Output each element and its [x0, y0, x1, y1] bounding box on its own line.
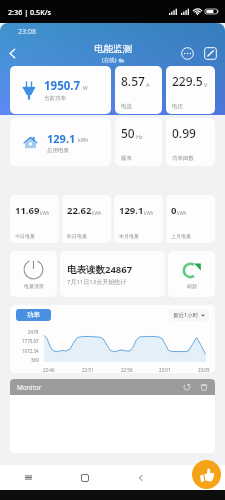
- staticText: Hz: [136, 133, 143, 140]
- button[interactable]: 11.69: [10, 195, 59, 243]
- staticText: 电表读数24867: [67, 263, 133, 276]
- staticText: 50: [121, 125, 135, 141]
- button[interactable]: 22.62: [62, 195, 111, 243]
- staticText: 今日电量: [15, 233, 35, 239]
- staticText: Monitor: [17, 383, 42, 392]
- button[interactable]: 129.1: [10, 118, 111, 166]
- staticText: kWh: [78, 137, 89, 144]
- button[interactable]: 50: [115, 118, 162, 166]
- button[interactable]: Home: [57, 465, 113, 490]
- staticText: 电压: [172, 103, 183, 110]
- button[interactable]: 229.5: [166, 66, 215, 114]
- staticText: 22.62: [67, 204, 92, 217]
- staticText: 22:46: [43, 367, 55, 373]
- staticText: 23:05: [198, 367, 210, 373]
- staticText: 0.99: [172, 125, 196, 141]
- button[interactable]: 1950.7: [10, 66, 111, 114]
- staticText: 2479: [28, 329, 39, 335]
- staticText: 本月电量: [119, 233, 139, 239]
- staticText: 129.1: [47, 131, 76, 146]
- staticText: 电量清零: [24, 283, 44, 289]
- staticText: 功率: [27, 311, 40, 319]
- staticText: 23:08: [18, 27, 36, 37]
- staticText: 1072.34: [22, 348, 39, 354]
- button[interactable]: Recent apps: [0, 465, 57, 490]
- staticText: 总用电量: [47, 147, 69, 154]
- button[interactable]: Edit: [201, 44, 219, 62]
- staticText: kWh: [177, 210, 187, 216]
- button[interactable]: 电量清零: [10, 251, 57, 297]
- staticText: 11.69: [15, 204, 40, 217]
- staticText: 22:56: [121, 367, 133, 373]
- staticText: 7月11日13点开始统计: [67, 278, 127, 286]
- button[interactable]: Delete: [198, 381, 210, 393]
- button[interactable]: Refresh: [181, 381, 193, 393]
- staticText: 22:51: [82, 367, 94, 373]
- staticText: 频率: [121, 155, 132, 162]
- staticText: 最近1小时: [173, 311, 199, 319]
- button[interactable]: 0: [166, 195, 215, 243]
- staticText: 0: [171, 204, 177, 217]
- button[interactable]: 最近1小时: [169, 309, 209, 321]
- staticText: 功率因数: [172, 155, 194, 162]
- staticText: (在线): [102, 56, 117, 64]
- button[interactable]: Back: [1, 42, 23, 64]
- staticText: 369: [31, 357, 39, 363]
- button[interactable]: 刷新: [168, 251, 215, 297]
- button[interactable]: 8.57: [115, 66, 162, 114]
- staticText: kWh: [144, 210, 154, 216]
- button[interactable]: 功率: [16, 309, 51, 321]
- button[interactable]: 0.99: [166, 118, 215, 166]
- staticText: 当前功率: [44, 95, 66, 102]
- staticText: 129.1: [119, 204, 144, 217]
- staticText: kWh: [92, 210, 102, 216]
- staticText: 上月电量: [171, 233, 191, 239]
- button[interactable]: 129.1: [114, 195, 163, 243]
- staticText: 1775.67: [22, 338, 39, 344]
- staticText: V: [204, 81, 208, 88]
- button[interactable]: Back: [113, 465, 169, 490]
- staticText: 昨日电量: [67, 233, 87, 239]
- button[interactable]: More options: [178, 44, 196, 62]
- staticText: kWh: [40, 210, 50, 216]
- staticText: 电能监测: [94, 43, 132, 55]
- staticText: 23:01: [159, 367, 171, 373]
- staticText: W: [83, 85, 88, 92]
- staticText: 电流: [121, 103, 132, 110]
- staticText: 8.57: [121, 73, 145, 89]
- staticText: A: [146, 81, 150, 88]
- staticText: 2:36 | 0.5K/s: [8, 7, 51, 17]
- staticText: 1950.7: [44, 78, 81, 94]
- staticText: 229.5: [172, 73, 203, 89]
- button[interactable]: 电表读数24867: [60, 251, 165, 297]
- button[interactable]: Assistant: [192, 460, 221, 489]
- staticText: 刷新: [187, 283, 197, 289]
